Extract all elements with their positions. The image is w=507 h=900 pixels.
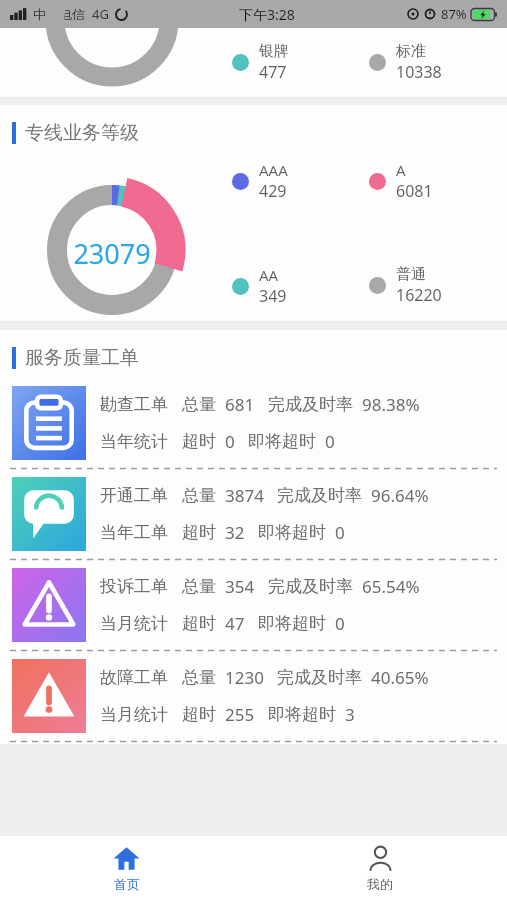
button[interactable]: 投诉工单 bbox=[0, 562, 507, 648]
staticText: 完成及时率 bbox=[277, 667, 362, 688]
staticText: 完成及时率 bbox=[268, 576, 353, 597]
staticText: 超时 bbox=[182, 522, 216, 543]
button[interactable]: 首页 bbox=[0, 836, 253, 900]
staticText: 勘查工单 bbox=[100, 394, 168, 415]
staticText: 681 bbox=[225, 393, 255, 416]
staticText: 3874 bbox=[225, 484, 264, 507]
button[interactable]: 开通工单 bbox=[0, 471, 507, 557]
staticText: 专线业务等级 bbox=[25, 121, 139, 145]
staticText: A bbox=[396, 160, 406, 180]
staticText: 0 bbox=[225, 430, 235, 453]
staticText: 96.64% bbox=[371, 484, 429, 507]
button[interactable]: 故障工单 bbox=[0, 653, 507, 739]
staticText: 349 bbox=[259, 285, 287, 307]
button[interactable]: 我的 bbox=[253, 836, 507, 900]
staticText: 银牌 bbox=[259, 42, 289, 61]
staticText: 255 bbox=[225, 703, 255, 726]
staticText: AAA bbox=[259, 160, 288, 180]
staticText: 32 bbox=[225, 521, 245, 544]
staticText: 10338 bbox=[396, 61, 442, 83]
staticText: 429 bbox=[259, 180, 287, 202]
staticText: 中国电信 bbox=[33, 6, 85, 22]
staticText: 23079 bbox=[73, 235, 151, 265]
staticText: 当月统计 bbox=[100, 704, 168, 725]
staticText: 1230 bbox=[225, 666, 264, 689]
staticText: 标准 bbox=[396, 42, 426, 61]
staticText: 我的 bbox=[367, 876, 393, 892]
staticText: 40.65% bbox=[371, 666, 429, 689]
staticText: 4G bbox=[92, 5, 109, 23]
staticText: 即将超时 bbox=[258, 613, 326, 634]
staticText: 98.38% bbox=[362, 393, 420, 416]
staticText: 即将超时 bbox=[268, 704, 336, 725]
staticText: 0 bbox=[335, 612, 345, 635]
other: 故障工单 bbox=[12, 659, 86, 733]
staticText: 超时 bbox=[182, 431, 216, 452]
staticText: 故障工单 bbox=[100, 667, 168, 688]
staticText: 6081 bbox=[396, 180, 433, 202]
staticText: 当月统计 bbox=[100, 613, 168, 634]
staticText: 87% bbox=[441, 5, 467, 23]
staticText: 服务质量工单 bbox=[25, 346, 139, 370]
staticText: 下午3:28 bbox=[239, 5, 295, 24]
staticText: 3 bbox=[345, 703, 355, 726]
staticText: 总量 bbox=[182, 667, 216, 688]
staticText: 354 bbox=[225, 575, 255, 598]
staticText: 超时 bbox=[182, 704, 216, 725]
other: 勘查工单 bbox=[12, 386, 86, 460]
staticText: 当年工单 bbox=[100, 522, 168, 543]
other: 投诉工单 bbox=[12, 568, 86, 642]
staticText: AA bbox=[259, 265, 279, 285]
staticText: 完成及时率 bbox=[277, 485, 362, 506]
staticText: 0 bbox=[325, 430, 335, 453]
staticText: 总量 bbox=[182, 394, 216, 415]
staticText: 总量 bbox=[182, 485, 216, 506]
staticText: 16220 bbox=[396, 284, 442, 306]
staticText: 总量 bbox=[182, 576, 216, 597]
staticText: 首页 bbox=[114, 876, 140, 892]
staticText: 普通 bbox=[396, 265, 426, 284]
staticText: 投诉工单 bbox=[100, 576, 168, 597]
staticText: 即将超时 bbox=[248, 431, 316, 452]
staticText: 即将超时 bbox=[258, 522, 326, 543]
staticText: 47 bbox=[225, 612, 245, 635]
staticText: 完成及时率 bbox=[268, 394, 353, 415]
staticText: 65.54% bbox=[362, 575, 420, 598]
other: 开通工单 bbox=[12, 477, 86, 551]
button[interactable]: 勘查工单 bbox=[0, 380, 507, 466]
staticText: 0 bbox=[335, 521, 345, 544]
staticText: 开通工单 bbox=[100, 485, 168, 506]
staticText: 超时 bbox=[182, 613, 216, 634]
staticText: 477 bbox=[259, 61, 287, 83]
staticText: 当年统计 bbox=[100, 431, 168, 452]
